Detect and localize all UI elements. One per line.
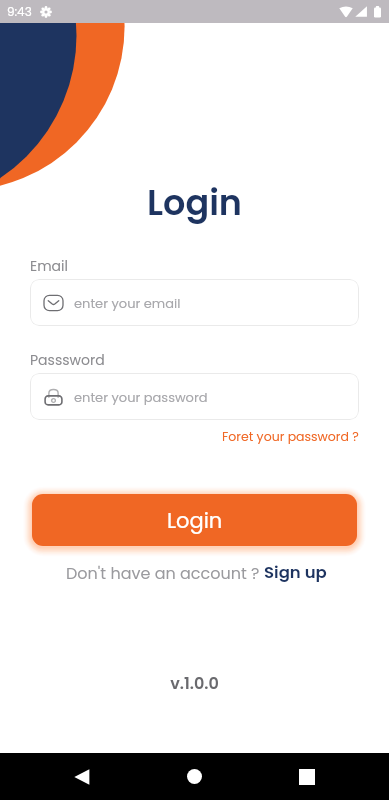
button[interactable]: Sign up [264, 561, 327, 584]
staticText: Login [0, 178, 389, 227]
button[interactable]: Home [171, 753, 218, 800]
button[interactable]: Recent apps [283, 753, 330, 800]
staticText: enter your email [74, 294, 181, 312]
staticText: Foret your password ? [222, 428, 359, 445]
staticText: v.1.0.0 [0, 672, 389, 694]
staticText: 9:43 [7, 3, 32, 20]
staticText: Login [167, 506, 223, 535]
button[interactable]: enter your email [30, 279, 359, 326]
staticText: Don't have an account ? [66, 562, 260, 584]
staticText: Sign up [264, 561, 327, 584]
staticText: Passsword [30, 350, 105, 370]
button[interactable]: Foret your password ? [222, 428, 359, 445]
button[interactable]: Login [32, 494, 357, 546]
staticText: Email [30, 256, 68, 276]
button[interactable]: Back [58, 753, 105, 800]
staticText: enter your password [74, 388, 208, 406]
button[interactable]: enter your password [30, 373, 359, 420]
